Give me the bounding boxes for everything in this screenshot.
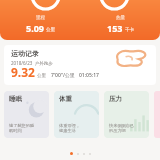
staticText: 2018/6/23 户外跑步 [11,60,53,66]
button[interactable]: 里程 [0,0,160,40]
staticText: 热量 [116,15,125,21]
button[interactable]: 里程 [0,15,80,34]
button[interactable]: 睡眠 [4,91,49,138]
staticText: 5.09 [26,22,44,34]
staticText: 公里 [46,27,55,33]
staticText: 压力 [109,95,122,103]
button[interactable]: 运动记录 [4,45,156,85]
staticText: 9.32 [11,64,35,80]
staticText: 体重管理， 健康生活 [59,123,80,133]
staticText: 睡眠 [9,95,22,103]
staticText: 懂了解您的睡 眠时间 [9,123,35,133]
staticText: 体重 [59,95,72,103]
staticText: 快来测测自己 的压力吧 [109,123,135,133]
button[interactable]: 体重 [54,91,99,138]
staticText: 公里 [37,73,46,79]
button[interactable]: 压力 [104,91,149,138]
staticText: 01:05:17 [79,72,99,79]
staticText: 千卡 [125,27,134,33]
button[interactable]: 热量 [80,15,160,34]
staticText: 运动记录 [11,49,39,58]
staticText: 7'00"/公里 [51,72,75,79]
staticText: 153 [107,22,123,34]
staticText: 里程 [36,15,45,21]
